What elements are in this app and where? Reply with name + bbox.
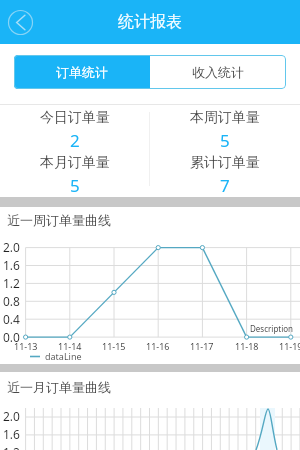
staticText: 11-15 (102, 340, 126, 352)
staticText: 11-16 (146, 340, 170, 352)
staticText: 1.2 (3, 444, 20, 450)
staticText: 累计订单量 (190, 154, 260, 172)
staticText: 0.0 (3, 329, 20, 345)
staticText: 本月订单量 (40, 154, 110, 172)
staticText: 7 (220, 174, 230, 197)
staticText: 11-19 (279, 340, 300, 352)
staticText: dataLine (45, 350, 82, 362)
staticText: 11-13 (14, 340, 38, 352)
staticText: 11-17 (190, 340, 214, 352)
button[interactable]: 本周订单量 (150, 108, 300, 153)
staticText: 11-18 (235, 340, 259, 352)
staticText: 5 (70, 174, 80, 197)
staticText: 1.6 (3, 426, 20, 442)
staticText: 2 (70, 129, 80, 152)
staticText: 1.6 (3, 257, 20, 273)
button[interactable]: 订单统计 (14, 55, 150, 89)
staticText: 5 (220, 129, 230, 152)
button[interactable]: 本月订单量 (0, 153, 150, 197)
staticText: 收入统计 (192, 64, 244, 80)
button[interactable]: Back (7, 9, 34, 36)
staticText: 统计报表 (118, 12, 182, 32)
staticText: 近一周订单量曲线 (7, 212, 111, 228)
button[interactable]: 收入统计 (150, 55, 286, 89)
staticText: Description (250, 323, 294, 334)
staticText: 今日订单量 (40, 109, 110, 127)
staticText: 0.8 (3, 293, 20, 309)
staticText: 订单统计 (56, 64, 108, 80)
staticText: 近一月订单量曲线 (7, 379, 111, 395)
staticText: 2.0 (3, 239, 20, 255)
staticText: 1.2 (3, 275, 20, 291)
staticText: 0.4 (3, 311, 20, 327)
staticText: 本周订单量 (190, 109, 260, 127)
staticText: 2.0 (3, 408, 20, 424)
button[interactable]: 累计订单量 (150, 153, 300, 197)
staticText: 11-14 (58, 340, 82, 352)
button[interactable]: 今日订单量 (0, 108, 150, 153)
